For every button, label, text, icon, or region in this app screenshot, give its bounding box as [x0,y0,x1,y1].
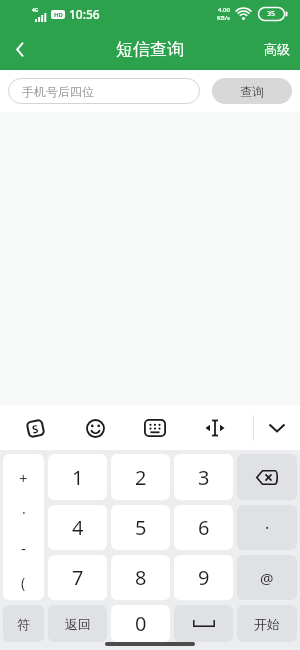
button[interactable]: @ [237,555,297,600]
staticText: 短信查询 [116,39,184,60]
staticText: 4 [72,514,84,541]
staticText: 7 [72,564,84,591]
button[interactable]: 高级 [264,41,290,57]
button[interactable]: 2 [111,454,170,500]
staticText: KB/s [217,14,230,22]
staticText: HD [54,11,63,19]
button[interactable]: 9 [174,555,233,600]
button[interactable] [86,419,105,438]
staticText: 9 [198,564,210,591]
staticText: S [30,420,40,436]
button[interactable] [0,29,40,69]
staticText: 手机号后四位 [22,84,94,99]
staticText: 3 [198,464,210,491]
button[interactable] [268,420,286,436]
staticText: 0 [135,610,147,637]
staticText: 返回 [65,616,91,632]
button[interactable]: 8 [111,555,170,600]
staticText: 开始 [254,616,280,632]
button[interactable]: 返回 [48,605,107,642]
staticText: 8 [135,564,147,591]
button[interactable] [237,454,297,500]
staticText: 查询 [240,84,264,99]
staticText: · [265,517,270,539]
button[interactable]: S [25,418,46,439]
staticText: 4G [32,7,39,14]
staticText: · [22,503,26,522]
staticText: 2 [135,464,147,491]
button[interactable]: 7 [48,555,107,600]
button[interactable]: + [3,454,44,600]
button[interactable]: 1 [48,454,107,500]
staticText: 符 [17,616,30,632]
staticText: 5 [135,514,147,541]
button[interactable]: 5 [111,505,170,550]
staticText: @ [260,568,274,588]
button[interactable]: 0 [111,605,170,642]
staticText: 6 [198,514,210,541]
staticText: - [21,538,26,558]
button[interactable]: 开始 [237,605,297,642]
staticText: + [19,468,28,488]
button[interactable]: 查询 [212,78,292,104]
button[interactable] [144,419,166,437]
staticText: 4.00 [218,6,230,14]
button[interactable]: 符 [3,605,44,642]
staticText: 10:56 [69,6,100,22]
staticText: ( [21,573,26,592]
button[interactable]: 3 [174,454,233,500]
button[interactable]: 手机号后四位 [8,78,200,104]
button[interactable]: 6 [174,505,233,550]
button[interactable]: 4 [48,505,107,550]
button[interactable] [204,418,226,438]
staticText: 1 [72,464,84,491]
staticText: 35 [267,9,276,19]
staticText: 高级 [264,41,290,57]
button[interactable] [174,605,233,642]
button[interactable]: · [237,505,297,550]
